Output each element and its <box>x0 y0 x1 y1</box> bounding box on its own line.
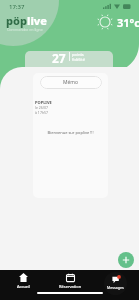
button[interactable]: Mémo <box>40 76 102 89</box>
staticText: points <box>72 52 84 57</box>
button[interactable]: Messages <box>104 272 127 295</box>
staticText: pöp <box>6 13 27 28</box>
staticText: 31°c <box>117 15 139 30</box>
staticText: 17:37 <box>9 3 25 11</box>
staticText: Commandez en ligne <box>7 27 43 32</box>
staticText: le 26/07 <box>35 105 49 110</box>
staticText: POPLIVE <box>35 100 52 105</box>
button[interactable]: 27 <box>52 50 85 63</box>
staticText: 27 <box>52 50 66 63</box>
staticText: Bienvenue sur poplive !!! <box>33 130 108 135</box>
staticText: live <box>27 13 47 28</box>
staticText: fidélité <box>72 57 85 62</box>
button[interactable]: Réservation <box>47 270 93 292</box>
staticText: Messages <box>107 285 124 290</box>
staticText: Mémo <box>63 79 79 86</box>
staticText: Réservation <box>59 284 82 289</box>
staticText: à 17h57 <box>35 110 49 115</box>
button[interactable]: Ajouter <box>118 252 134 268</box>
button[interactable]: Accueil <box>0 270 47 292</box>
staticText: Accueil <box>17 284 31 289</box>
